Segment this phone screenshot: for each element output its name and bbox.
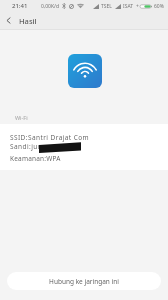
staticText: Hasil <box>19 16 37 26</box>
staticText: Sandi:junsantridrj <box>10 142 72 151</box>
button[interactable]: Hubung ke jaringan ini <box>7 272 161 290</box>
button[interactable]: Back <box>0 12 17 29</box>
staticText: SSID:Santri Drajat Com <box>10 133 90 142</box>
staticText: 21:41 <box>12 2 28 10</box>
staticText: 60% <box>154 3 164 10</box>
staticText: + <box>136 3 139 10</box>
staticText: TSEL <box>101 3 112 10</box>
staticText: Keamanan:WPA <box>10 154 61 163</box>
staticText: 0,00K/d <box>41 3 59 10</box>
staticText: Wi-Fi <box>15 114 28 121</box>
staticText: ISAT <box>123 3 134 10</box>
button[interactable]: Wi-Fi <box>68 54 102 88</box>
staticText: Hubung ke jaringan ini <box>49 277 119 286</box>
